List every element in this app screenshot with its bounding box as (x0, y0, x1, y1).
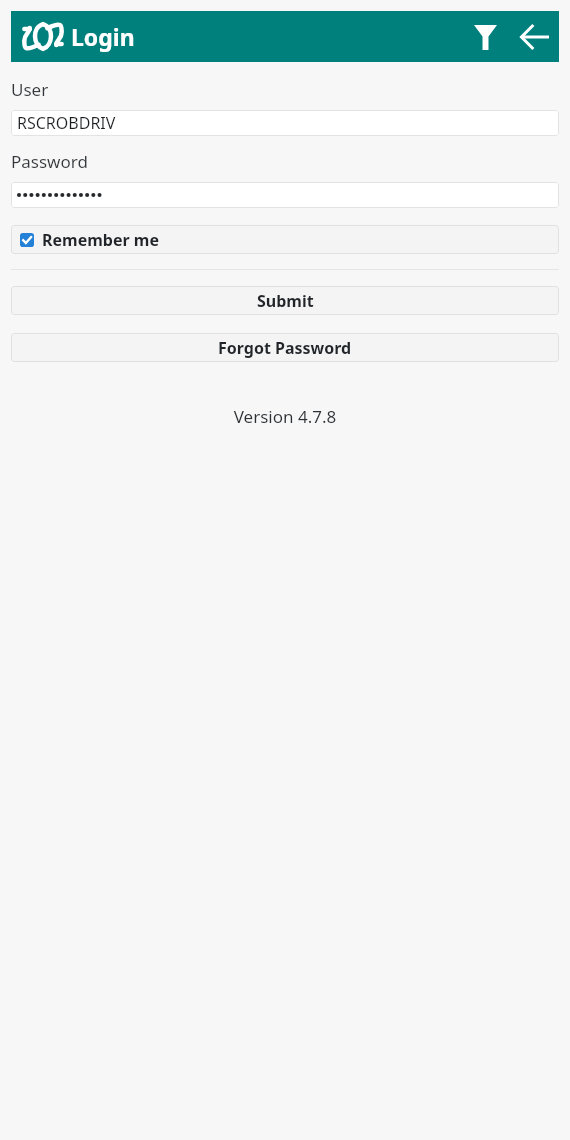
staticText: Version 4.7.8 (11, 405, 559, 428)
staticText: Password (11, 150, 88, 173)
button[interactable]: Filter (463, 15, 507, 59)
button[interactable]: Back (511, 14, 557, 60)
staticText: Login (71, 21, 135, 52)
button[interactable]: Forgot Password (11, 333, 559, 362)
button[interactable]: Remember me (11, 225, 559, 254)
staticText: RSCROBDRIV (17, 112, 116, 134)
staticText: Remember me (42, 229, 159, 251)
button[interactable] (11, 182, 559, 208)
button[interactable]: Submit (11, 286, 559, 315)
staticText: Submit (257, 290, 314, 312)
button[interactable]: RSCROBDRIV (11, 110, 559, 136)
staticText: Forgot Password (218, 337, 352, 359)
staticText: User (11, 78, 49, 101)
